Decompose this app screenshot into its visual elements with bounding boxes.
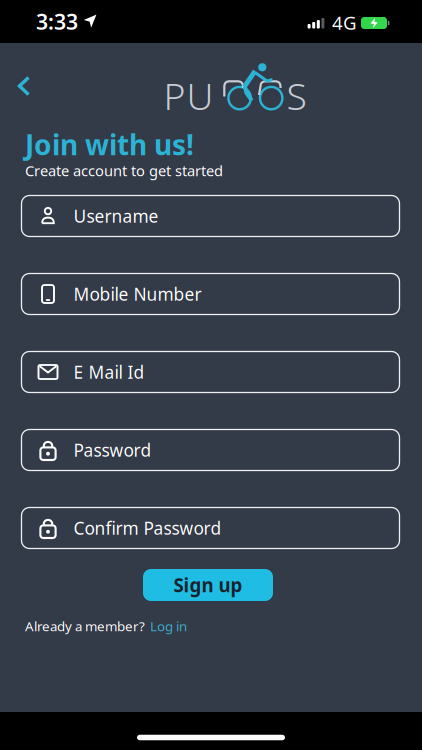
button[interactable]: E Mail Id (21, 351, 399, 392)
staticText: E Mail Id (73, 360, 144, 383)
button[interactable]: Log in (150, 617, 187, 635)
button[interactable]: Username (21, 195, 399, 236)
staticText: Mobile Number (73, 282, 201, 305)
button[interactable]: Confirm Password (21, 507, 399, 548)
staticText: Join with us! (25, 126, 194, 163)
staticText: Already a member? (25, 617, 145, 635)
button[interactable]: Mobile Number (21, 273, 399, 314)
staticText: Password (73, 438, 151, 461)
staticText: Sign up (173, 573, 242, 597)
staticText: Log in (150, 617, 187, 635)
staticText: S (286, 71, 306, 120)
staticText: Create account to get started (25, 161, 223, 180)
button[interactable]: Password (21, 429, 399, 470)
staticText: Username (73, 204, 158, 227)
staticText: PU (163, 71, 213, 120)
button[interactable]: Sign up (143, 569, 273, 601)
staticText: 3:33 (36, 7, 78, 36)
button[interactable]: Back (7, 65, 41, 106)
staticText: 4G (332, 10, 357, 35)
staticText: Confirm Password (73, 516, 221, 539)
